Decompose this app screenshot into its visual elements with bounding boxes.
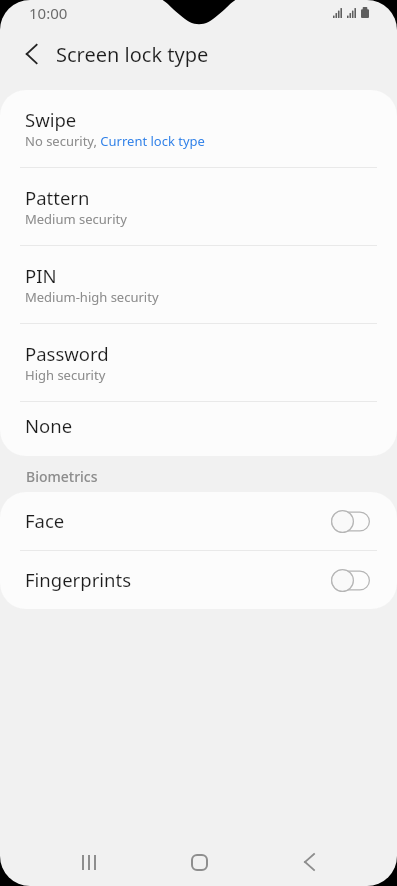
staticText: Screen lock type xyxy=(56,41,209,68)
staticText: Medium-high security xyxy=(25,288,159,306)
staticText: None xyxy=(25,413,73,438)
staticText: Face xyxy=(25,508,65,533)
button[interactable]: Pattern xyxy=(0,168,397,245)
staticText: Medium security xyxy=(25,210,127,228)
button[interactable]: Recent apps xyxy=(33,838,144,886)
staticText: Swipe xyxy=(25,107,77,132)
staticText: No security, Current lock type xyxy=(25,132,205,150)
button[interactable]: PIN xyxy=(0,246,397,323)
button[interactable]: Swipe xyxy=(0,90,397,167)
staticText: 10:00 xyxy=(29,3,68,23)
staticText: PIN xyxy=(25,263,57,288)
staticText: Pattern xyxy=(25,185,90,210)
button[interactable]: Password xyxy=(0,324,397,401)
staticText: Biometrics xyxy=(26,467,98,483)
button[interactable]: Navigate up xyxy=(10,30,57,77)
staticText: Password xyxy=(25,341,109,366)
button[interactable]: None xyxy=(0,402,397,456)
staticText: High security xyxy=(25,366,106,384)
button[interactable]: Face xyxy=(0,492,397,550)
staticText: Fingerprints xyxy=(25,567,132,592)
button[interactable]: Fingerprints xyxy=(0,551,397,609)
button[interactable]: Home xyxy=(144,838,254,886)
button[interactable]: Back xyxy=(254,838,364,886)
